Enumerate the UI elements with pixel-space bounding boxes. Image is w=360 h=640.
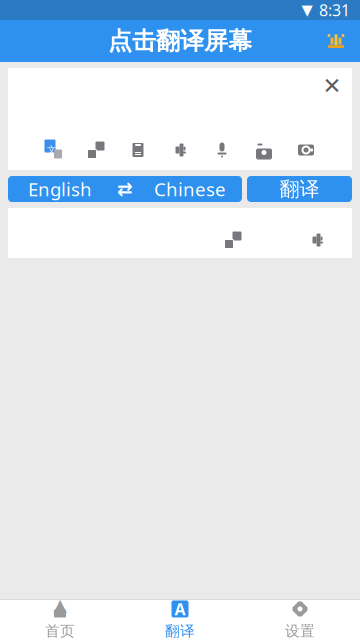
button[interactable]: Close bbox=[318, 74, 346, 98]
button[interactable]: Copy translation bbox=[216, 229, 250, 251]
button[interactable]: ▲ bbox=[0, 600, 120, 640]
staticText: ✕ bbox=[322, 73, 341, 99]
button[interactable]: Voice input bbox=[205, 138, 239, 162]
staticText: English bbox=[28, 177, 92, 201]
button[interactable]: Copy bbox=[79, 138, 113, 162]
button[interactable]: English bbox=[8, 176, 242, 202]
staticText: 首页 bbox=[45, 622, 75, 640]
staticText: ⇄ bbox=[117, 178, 133, 200]
button[interactable]: Camera bbox=[247, 138, 281, 162]
button[interactable]: A bbox=[120, 600, 240, 640]
button[interactable]: 设置 bbox=[240, 600, 360, 640]
staticText: 翻译 bbox=[279, 177, 319, 201]
button[interactable]: Scan image bbox=[289, 138, 323, 162]
staticText: 翻译 bbox=[165, 622, 195, 640]
staticText: Chinese bbox=[154, 177, 226, 201]
staticText: 文 bbox=[47, 144, 56, 156]
staticText: 设置 bbox=[285, 622, 315, 640]
staticText: ▲ bbox=[53, 595, 66, 615]
staticText: ▼ bbox=[301, 2, 312, 18]
button[interactable]: 翻译 bbox=[247, 176, 352, 202]
button[interactable]: Translate document bbox=[37, 138, 71, 162]
button[interactable]: Speak bbox=[163, 138, 197, 162]
button[interactable]: Paste bbox=[121, 138, 155, 162]
button[interactable]: Upgrade to premium bbox=[318, 20, 354, 62]
staticText: 点击翻译屏幕 bbox=[108, 26, 252, 56]
staticText: A bbox=[174, 598, 185, 620]
button[interactable]: Speak translation bbox=[300, 229, 334, 251]
staticText: 8:31 bbox=[319, 0, 350, 21]
